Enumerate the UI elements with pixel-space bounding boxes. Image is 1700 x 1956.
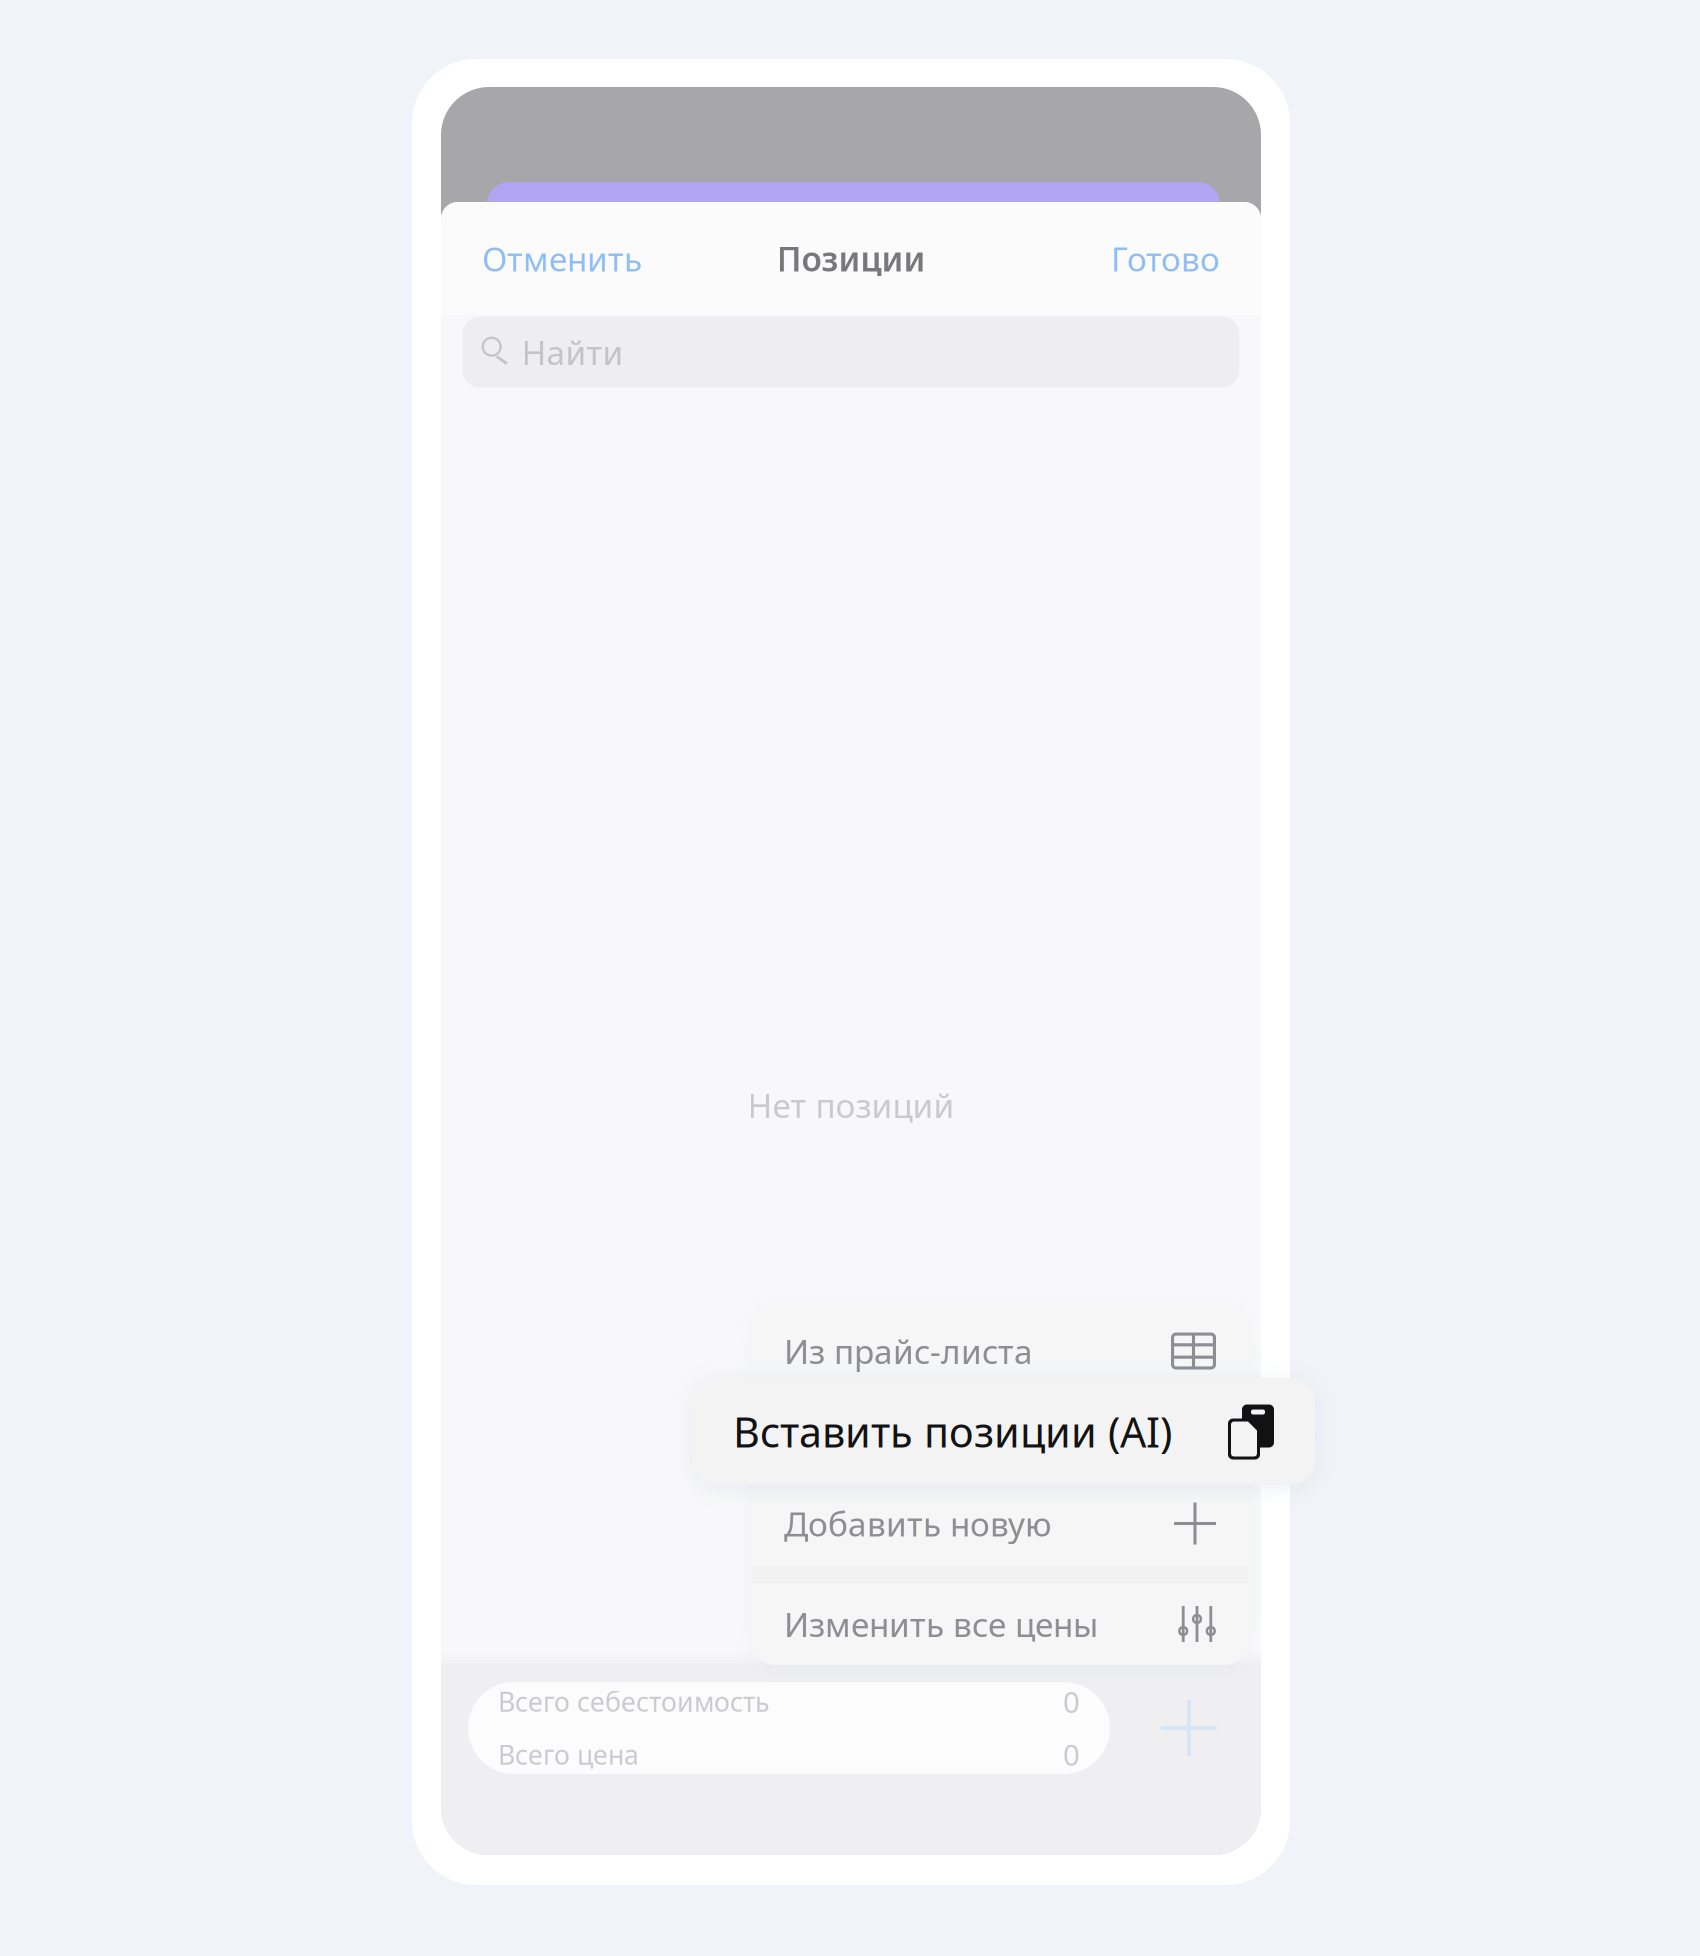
staticText: Изменить все цены bbox=[784, 1602, 1098, 1646]
button[interactable]: Добавить новую bbox=[752, 1481, 1248, 1566]
button[interactable]: Отменить bbox=[482, 226, 642, 290]
staticText: Готово bbox=[1111, 236, 1220, 281]
button[interactable]: Из прайс-листа bbox=[752, 1305, 1248, 1397]
staticText: Из прайс-листа bbox=[784, 1329, 1033, 1373]
staticText: Нет позиций bbox=[747, 1083, 954, 1127]
staticText: 0 bbox=[1063, 1735, 1080, 1774]
staticText: Вставить позиции (AI) bbox=[733, 1404, 1172, 1459]
staticText: Всего цена bbox=[498, 1737, 639, 1772]
staticText: Отменить bbox=[482, 236, 642, 281]
staticText: Добавить новую bbox=[784, 1501, 1052, 1546]
staticText: 0 bbox=[1063, 1682, 1080, 1721]
button[interactable]: Добавить позицию bbox=[1110, 1682, 1268, 1774]
staticText: Позиции bbox=[776, 236, 925, 281]
staticText: Найти bbox=[521, 330, 623, 374]
staticText: Всего себестоимость bbox=[498, 1684, 770, 1719]
button[interactable]: Вставить позиции (AI) bbox=[692, 1378, 1315, 1485]
button[interactable]: Готово bbox=[1111, 226, 1220, 290]
button[interactable]: Изменить все цены bbox=[752, 1583, 1248, 1665]
